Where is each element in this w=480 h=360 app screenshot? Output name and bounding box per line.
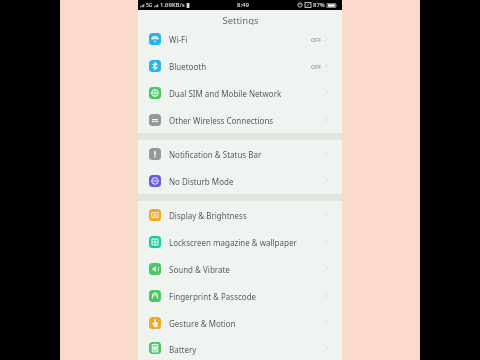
- button[interactable]: Gesture & Motion: [138, 309, 342, 336]
- button[interactable]: Bluetooth: [138, 52, 342, 79]
- staticText: OFF: [311, 63, 322, 70]
- button[interactable]: Lockscreen magazine & wallpaper: [138, 228, 342, 255]
- staticText: Display & Brightness: [169, 210, 247, 221]
- staticText: 87%: [313, 1, 325, 9]
- staticText: Notification & Status Bar: [169, 149, 262, 160]
- staticText: Battery: [169, 344, 197, 355]
- staticText: No Disturb Mode: [169, 176, 234, 187]
- staticText: Bluetooth: [169, 61, 207, 72]
- button[interactable]: No Disturb Mode: [138, 167, 342, 194]
- button[interactable]: Wi-Fi: [138, 25, 342, 52]
- button[interactable]: Battery: [138, 336, 342, 360]
- button[interactable]: Fingerprint & Passcode: [138, 282, 342, 309]
- staticText: 1.69KB/s: [160, 1, 185, 9]
- staticText: Gesture & Motion: [169, 318, 236, 329]
- button[interactable]: Sound & Vibrate: [138, 255, 342, 282]
- staticText: Sound & Vibrate: [169, 264, 230, 275]
- staticText: Settings: [222, 14, 259, 27]
- staticText: Lockscreen magazine & wallpaper: [169, 237, 297, 248]
- staticText: Dual SIM and Mobile Network: [169, 88, 282, 99]
- button[interactable]: Dual SIM and Mobile Network: [138, 79, 342, 106]
- staticText: 5G: [146, 2, 153, 9]
- staticText: Fingerprint & Passcode: [169, 291, 257, 302]
- button[interactable]: Other Wireless Connections: [138, 106, 342, 133]
- button[interactable]: Display & Brightness: [138, 201, 342, 228]
- staticText: Wi-Fi: [169, 34, 188, 45]
- staticText: Other Wireless Connections: [169, 115, 274, 126]
- button[interactable]: Notification & Status Bar: [138, 140, 342, 167]
- staticText: OFF: [311, 36, 322, 43]
- staticText: 8:49: [237, 1, 249, 9]
